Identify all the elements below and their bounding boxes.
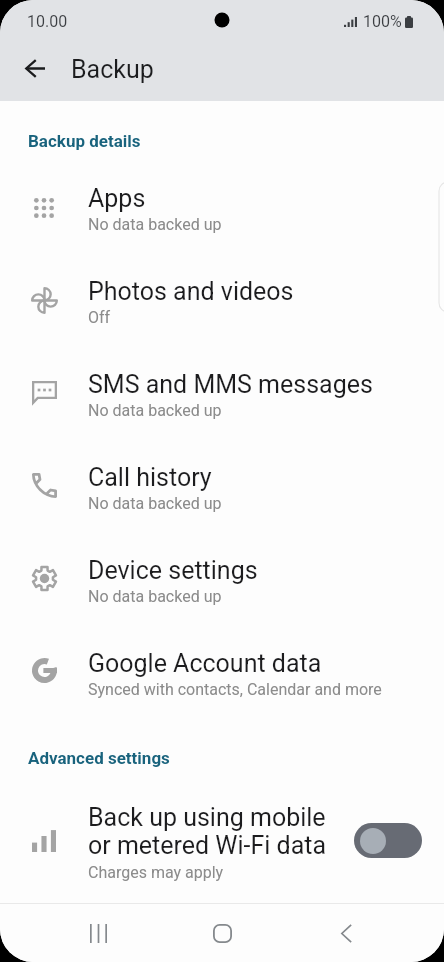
button[interactable]: Photos and videos (0, 255, 444, 348)
button[interactable]: Back up using mobile or metered Wi-Fi da… (354, 823, 422, 858)
button[interactable]: Navigate up (11, 47, 59, 95)
button[interactable]: Back (294, 904, 399, 962)
staticText: 10.00 (27, 12, 68, 31)
staticText: Photos and videos (88, 277, 294, 306)
staticText: No data backed up (88, 494, 222, 513)
staticText: SMS and MMS messages (88, 370, 373, 399)
button[interactable]: Call history (0, 441, 444, 534)
staticText: Synced with contacts, Calendar and more (88, 680, 382, 699)
staticText: Backup details (28, 131, 141, 151)
staticText: Apps (88, 184, 146, 213)
staticText: Google Account data (88, 649, 322, 678)
button[interactable]: Home (151, 904, 294, 962)
staticText: Device settings (88, 556, 258, 585)
button[interactable]: Apps (0, 162, 444, 255)
staticText: Call history (88, 463, 212, 492)
staticText: Backup (71, 55, 154, 84)
button[interactable]: Google Account data (0, 627, 444, 720)
staticText: Advanced settings (28, 748, 170, 768)
staticText: 100% (363, 12, 402, 31)
button[interactable]: Recent apps (46, 904, 151, 962)
staticText: Back up using mobile or metered Wi-Fi da… (88, 803, 327, 860)
button[interactable]: Device settings (0, 534, 444, 627)
button[interactable]: Back up using mobile or metered Wi-Fi da… (0, 794, 444, 890)
staticText: No data backed up (88, 587, 222, 606)
button[interactable]: SMS and MMS messages (0, 348, 444, 441)
staticText: No data backed up (88, 401, 222, 420)
staticText: Charges may apply (88, 863, 224, 882)
staticText: Off (88, 308, 111, 327)
staticText: No data backed up (88, 215, 222, 234)
